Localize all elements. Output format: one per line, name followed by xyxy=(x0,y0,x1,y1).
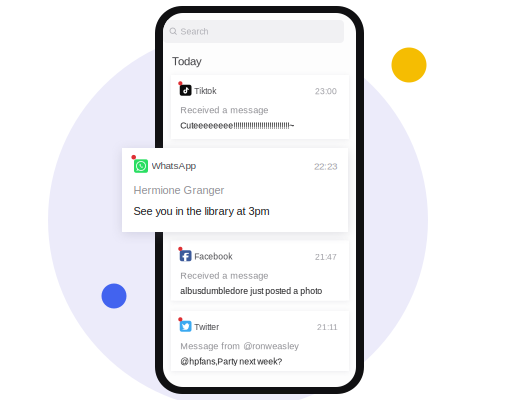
staticText: Tiktok xyxy=(194,86,216,96)
button[interactable]: Facebook xyxy=(171,240,349,300)
staticText: Received a message xyxy=(180,270,268,281)
staticText: Twitter xyxy=(194,322,219,332)
staticText: Cuteeeeeeee!!!!!!!!!!!!!!!!!!!!!!!!!!!!~ xyxy=(180,121,294,130)
staticText: WhatsApp xyxy=(152,160,196,171)
staticText: Search xyxy=(180,27,208,36)
staticText: albusdumbledore just posted a photo xyxy=(180,286,322,296)
staticText: Facebook xyxy=(194,252,232,261)
staticText: Today xyxy=(172,55,202,68)
staticText: 22:23 xyxy=(314,161,337,172)
staticText: See you in the library at 3pm xyxy=(134,205,270,217)
staticText: Hermione Granger xyxy=(134,184,225,196)
button[interactable]: Tiktok xyxy=(171,75,349,139)
button[interactable]: Search xyxy=(163,20,344,43)
staticText: Received a message xyxy=(180,105,268,115)
staticText: @hpfans,Party next week? xyxy=(180,357,282,366)
staticText: 21:47 xyxy=(315,252,337,261)
staticText: 21:11 xyxy=(317,322,337,332)
staticText: 23:00 xyxy=(315,86,337,96)
button[interactable]: Twitter xyxy=(171,311,349,371)
staticText: Message from @ronweasley xyxy=(180,341,299,351)
